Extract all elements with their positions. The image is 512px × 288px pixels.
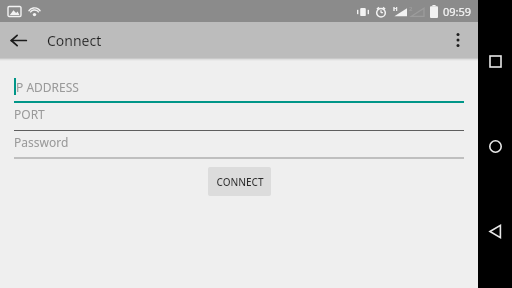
staticText: 2 <box>409 5 413 13</box>
staticText: CONNECT <box>216 175 264 189</box>
staticText: H <box>393 5 398 13</box>
button[interactable]: CONNECT <box>208 167 271 196</box>
button[interactable]: Home <box>478 129 512 163</box>
staticText: 09:59 <box>443 4 472 19</box>
button[interactable]: Navigate up <box>0 22 36 58</box>
staticText: PORT <box>14 106 45 122</box>
button[interactable]: Back <box>478 214 512 248</box>
button[interactable]: P ADDRESS <box>0 75 478 103</box>
button[interactable]: More options <box>440 22 476 58</box>
staticText: Connect <box>47 31 102 50</box>
staticText: P ADDRESS <box>16 79 79 95</box>
button[interactable]: PORT <box>0 103 478 131</box>
staticText: Password <box>14 134 69 150</box>
button[interactable]: Password <box>0 131 478 159</box>
button[interactable]: Recent apps <box>478 44 512 78</box>
